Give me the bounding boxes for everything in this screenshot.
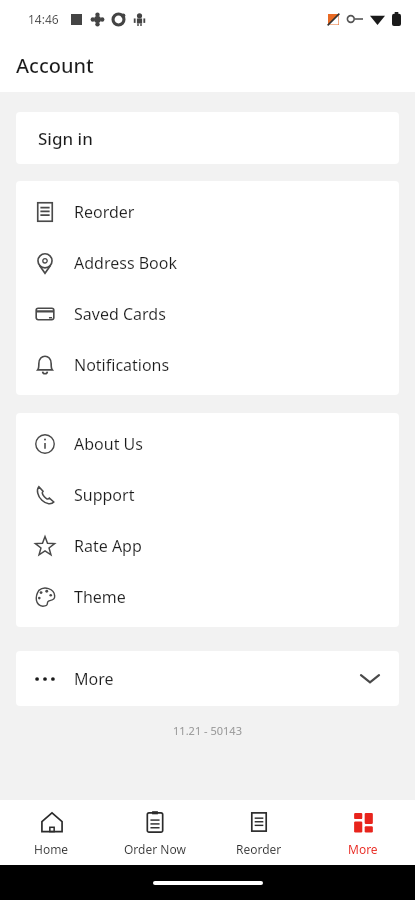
button[interactable]: Order Now <box>103 800 207 865</box>
button[interactable]: Saved Cards <box>16 288 399 339</box>
staticText: Reorder <box>74 201 135 223</box>
staticText: Address Book <box>74 252 178 274</box>
button[interactable]: About Us <box>16 418 399 469</box>
button[interactable]: Sign in <box>16 112 399 164</box>
staticText: Reorder <box>236 841 282 857</box>
staticText: Notifications <box>74 354 170 376</box>
button[interactable]: More <box>16 651 399 706</box>
staticText: Theme <box>74 586 126 608</box>
staticText: Support <box>74 484 135 506</box>
staticText: Account <box>16 52 94 79</box>
staticText: 14:46 <box>28 11 59 27</box>
button[interactable]: Notifications <box>16 339 399 390</box>
staticText: More <box>74 668 114 690</box>
staticText: Saved Cards <box>74 303 166 325</box>
button[interactable]: Reorder <box>207 800 311 865</box>
staticText: Rate App <box>74 535 142 557</box>
staticText: Home <box>34 841 69 857</box>
button[interactable]: Support <box>16 469 399 520</box>
button[interactable]: Address Book <box>16 237 399 288</box>
button[interactable]: Rate App <box>16 520 399 571</box>
button[interactable]: More <box>311 800 415 865</box>
button[interactable]: Home <box>0 800 103 865</box>
button[interactable]: Theme <box>16 571 399 622</box>
staticText: Order Now <box>124 841 186 857</box>
staticText: Sign in <box>38 127 93 150</box>
staticText: 11.21 - 50143 <box>0 723 415 738</box>
staticText: More <box>348 841 378 857</box>
button[interactable]: Reorder <box>16 186 399 237</box>
staticText: About Us <box>74 433 143 455</box>
